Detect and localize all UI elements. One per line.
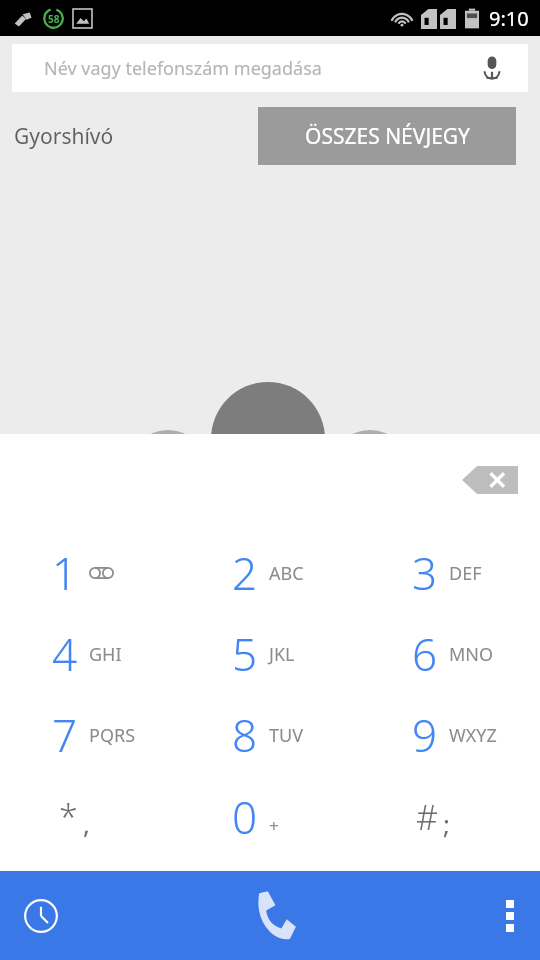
staticText: Gyorshívó [14,122,114,151]
button[interactable]: 7 [0,694,180,775]
staticText: ÖSSZES NÉVJEGY [305,122,470,151]
staticText: GHI [89,642,122,667]
button[interactable]: 9 [360,694,540,775]
staticText: 3 [412,543,438,603]
button[interactable]: Voice search [474,50,510,86]
staticText: 9:10 [489,5,529,32]
button[interactable]: # [360,775,540,859]
button[interactable]: 6 [360,613,540,694]
staticText: 6 [412,624,438,684]
staticText: 5 [232,624,258,684]
button[interactable]: 8 [180,694,360,775]
button[interactable]: 3 [360,532,540,613]
staticText: 2 [232,543,258,603]
staticText: ABC [269,561,304,586]
staticText: TUV [269,723,303,748]
button[interactable]: 1 [0,532,180,613]
staticText: MNO [449,642,494,667]
button[interactable]: Név vagy telefonszám megadása [12,44,528,92]
button[interactable]: 2 [180,532,360,613]
staticText: 7 [52,705,78,765]
staticText: # [416,794,438,840]
button[interactable]: Backspace [462,464,518,496]
button[interactable]: More options [360,871,540,960]
button[interactable]: 5 [180,613,360,694]
staticText: 1 [52,543,78,603]
button[interactable]: Recent calls [0,871,180,960]
staticText: 58 [48,12,60,26]
staticText: Név vagy telefonszám megadása [44,56,322,81]
staticText: PQRS [89,723,136,748]
staticText: , [83,806,90,841]
staticText: JKL [269,642,295,667]
staticText: WXYZ [449,723,497,748]
staticText: * [59,794,78,840]
staticText: 9 [412,705,438,765]
button[interactable]: 4 [0,613,180,694]
button[interactable]: 0 [180,775,360,859]
staticText: DEF [449,561,482,586]
staticText: 0 [232,787,258,847]
button[interactable]: Dial pad [180,871,360,960]
button[interactable]: ÖSSZES NÉVJEGY [258,107,516,165]
staticText: + [269,814,279,837]
button[interactable]: * [0,775,180,859]
staticText: 4 [52,624,78,684]
staticText: 8 [232,705,258,765]
staticText: ; [443,806,450,841]
